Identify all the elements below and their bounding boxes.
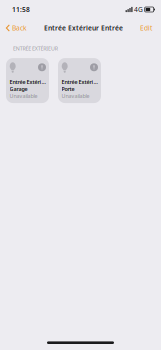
staticText: Entrée Extérieur [61,78,98,85]
staticText: 11:58 [12,5,30,14]
staticText: Porte [61,85,74,92]
button[interactable]: Edit [137,21,155,35]
staticText: Entrée Extérieur Entrée [44,24,123,32]
staticText: ENTRÉE EXTÉRIEUR [13,45,58,52]
staticText: Unavailable [9,92,37,100]
button[interactable]: Entrée Extérieur [58,58,101,103]
staticText: Entrée Extérieur [9,78,46,85]
staticText: 4G [134,5,143,14]
staticText: Edit [140,24,152,32]
button[interactable]: Entrée Extérieur [6,58,49,103]
button[interactable]: Back [2,21,30,35]
staticText: Back [12,24,27,32]
staticText: Unavailable [61,92,89,100]
staticText: Garage [9,85,27,92]
